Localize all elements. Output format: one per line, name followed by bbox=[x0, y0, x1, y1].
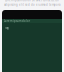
staticText: Tag bbox=[5, 26, 9, 29]
staticText: Lorem ipsum dolor sit amet consectetur bbox=[5, 0, 59, 2]
staticText: adipiscing elit sed do eiusmod tempora bbox=[4, 3, 60, 6]
staticText: Lorem ipsum dolor bbox=[4, 19, 30, 23]
